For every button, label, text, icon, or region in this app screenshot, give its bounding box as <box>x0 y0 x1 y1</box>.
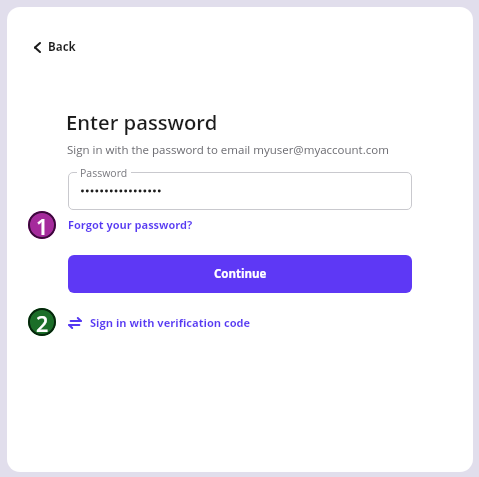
button[interactable]: Continue <box>68 255 412 293</box>
button[interactable]: Sign in with verification code <box>65 312 254 333</box>
staticText: Sign in with the password to email myuse… <box>67 142 389 158</box>
button[interactable]: Password <box>68 172 412 210</box>
staticText: Back <box>48 39 76 55</box>
staticText: Sign in with verification code <box>90 315 251 330</box>
staticText: 1 <box>36 212 49 239</box>
staticText: Forgot your password? <box>68 217 193 232</box>
other: Step 1 <box>28 211 56 239</box>
button[interactable]: Forgot your password? <box>65 214 196 235</box>
staticText: Enter password <box>66 108 218 136</box>
staticText: 2 <box>36 309 49 336</box>
staticText: Continue <box>214 266 267 282</box>
button[interactable]: Back <box>30 35 80 59</box>
staticText: Password <box>80 166 128 180</box>
other: Step 2 <box>28 308 56 336</box>
